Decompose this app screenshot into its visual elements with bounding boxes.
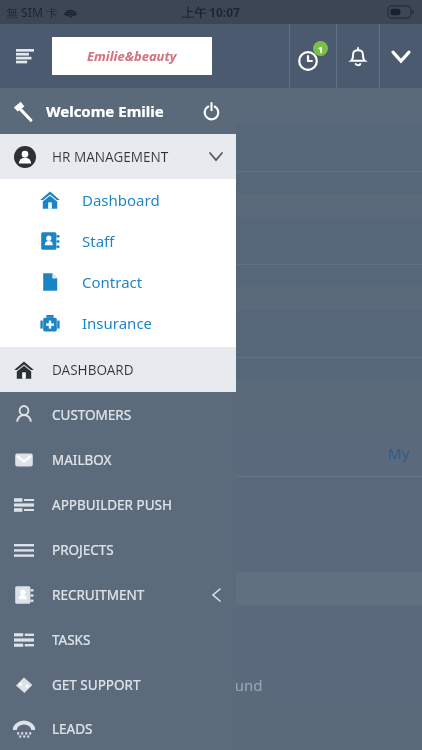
staticText: Search... — [92, 579, 148, 598]
button[interactable]: Welcome Emilie — [12, 88, 224, 134]
staticText: DASHBOARD — [52, 361, 134, 379]
button[interactable]: Emilie&beauty — [52, 37, 212, 75]
staticText: RECRUITMENT — [52, 586, 145, 604]
staticText: Emilie&beauty — [87, 47, 177, 65]
button[interactable]: Insurance — [40, 302, 236, 343]
staticText: 上午 10:07 — [182, 4, 240, 20]
staticText: CUSTOMERS — [52, 406, 132, 424]
staticText: CONVERTED LEADS — [65, 138, 196, 158]
button[interactable]: Open navigation menu — [0, 24, 50, 88]
button[interactable]: APPBUILDER PUSH — [14, 482, 220, 527]
staticText: 無 SIM 卡 — [6, 4, 59, 20]
staticText: HR MANAGEMENT — [52, 148, 169, 166]
button[interactable]: HR MANAGEMENT — [14, 134, 222, 179]
staticText: MAILBOX — [52, 451, 112, 469]
staticText: GET SUPPORT — [52, 676, 141, 694]
staticText: My — [388, 443, 410, 463]
button[interactable]: DASHBOARD — [14, 347, 236, 392]
button[interactable]: Staff — [40, 220, 236, 261]
button[interactable]: Log out — [198, 98, 224, 124]
button[interactable]: Dashboard — [40, 179, 236, 220]
staticText: 25 — [54, 534, 69, 552]
staticText: No entries found — [20, 675, 386, 695]
button[interactable]: CUSTOMERS — [14, 392, 220, 437]
button[interactable]: Notifications — [337, 24, 379, 88]
staticText: LEADS — [52, 720, 93, 738]
staticText: 1 — [318, 43, 324, 55]
staticText: APPBUILDER PUSH — [52, 496, 172, 514]
staticText: Insurance — [82, 313, 153, 333]
button[interactable]: TASKS — [14, 617, 220, 662]
button[interactable]: GET SUPPORT — [14, 662, 220, 707]
button[interactable]: MAILBOX — [14, 437, 220, 482]
button[interactable]: More options — [380, 24, 422, 88]
button[interactable]: LEADS — [14, 707, 220, 750]
staticText: Dashboard — [82, 190, 160, 210]
staticText: TASKS — [52, 631, 91, 649]
staticText: Contract — [82, 272, 143, 292]
button[interactable]: RECRUITMENT — [14, 572, 220, 617]
button[interactable]: Recent activity — [290, 24, 336, 88]
staticText: PROJECTS IN PROGRESS — [65, 231, 228, 251]
staticText: View All — [42, 495, 93, 514]
staticText: Welcome Emilie — [46, 101, 164, 121]
button[interactable]: PROJECTS — [14, 527, 220, 572]
button[interactable]: Contract — [40, 261, 236, 302]
staticText: PROJECTS — [52, 541, 114, 559]
staticText: Staff — [82, 231, 115, 251]
staticText: TASKS NOT FINISHED — [65, 324, 210, 344]
